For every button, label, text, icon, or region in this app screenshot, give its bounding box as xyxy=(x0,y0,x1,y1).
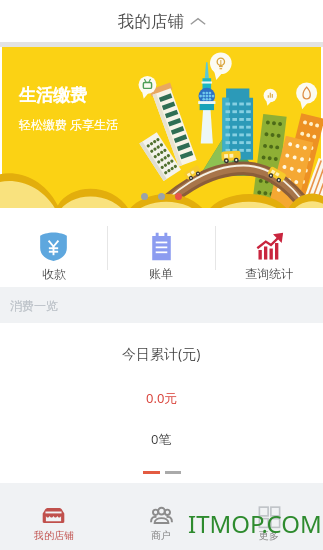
staticText: 我的店铺 xyxy=(34,529,74,542)
staticText: 账单 xyxy=(149,266,173,281)
button[interactable]: 商户 xyxy=(107,483,215,550)
staticText: 商户 xyxy=(151,529,171,542)
button[interactable]: 我的店铺 xyxy=(0,483,107,550)
staticText: ITMOP.COM xyxy=(188,507,322,540)
staticText: 更多 xyxy=(259,529,279,542)
staticText: 我的店铺 xyxy=(118,11,184,32)
staticText: 生活缴费 xyxy=(19,85,87,106)
button[interactable]: 收款 xyxy=(0,208,107,287)
staticText: 0笔 xyxy=(151,430,172,448)
staticText: 消费一览 xyxy=(10,298,58,313)
staticText: 0.0元 xyxy=(146,389,178,407)
staticText: 收款 xyxy=(42,266,66,281)
staticText: 查询统计 xyxy=(245,266,293,281)
button[interactable]: 账单 xyxy=(107,208,215,287)
button[interactable]: 查询统计 xyxy=(215,208,323,287)
button[interactable]: 我的店铺 xyxy=(110,7,214,36)
staticText: 今日累计(元) xyxy=(122,344,201,363)
staticText: 轻松缴费 乐享生活 xyxy=(19,116,119,132)
button[interactable]: 更多 xyxy=(215,483,323,550)
